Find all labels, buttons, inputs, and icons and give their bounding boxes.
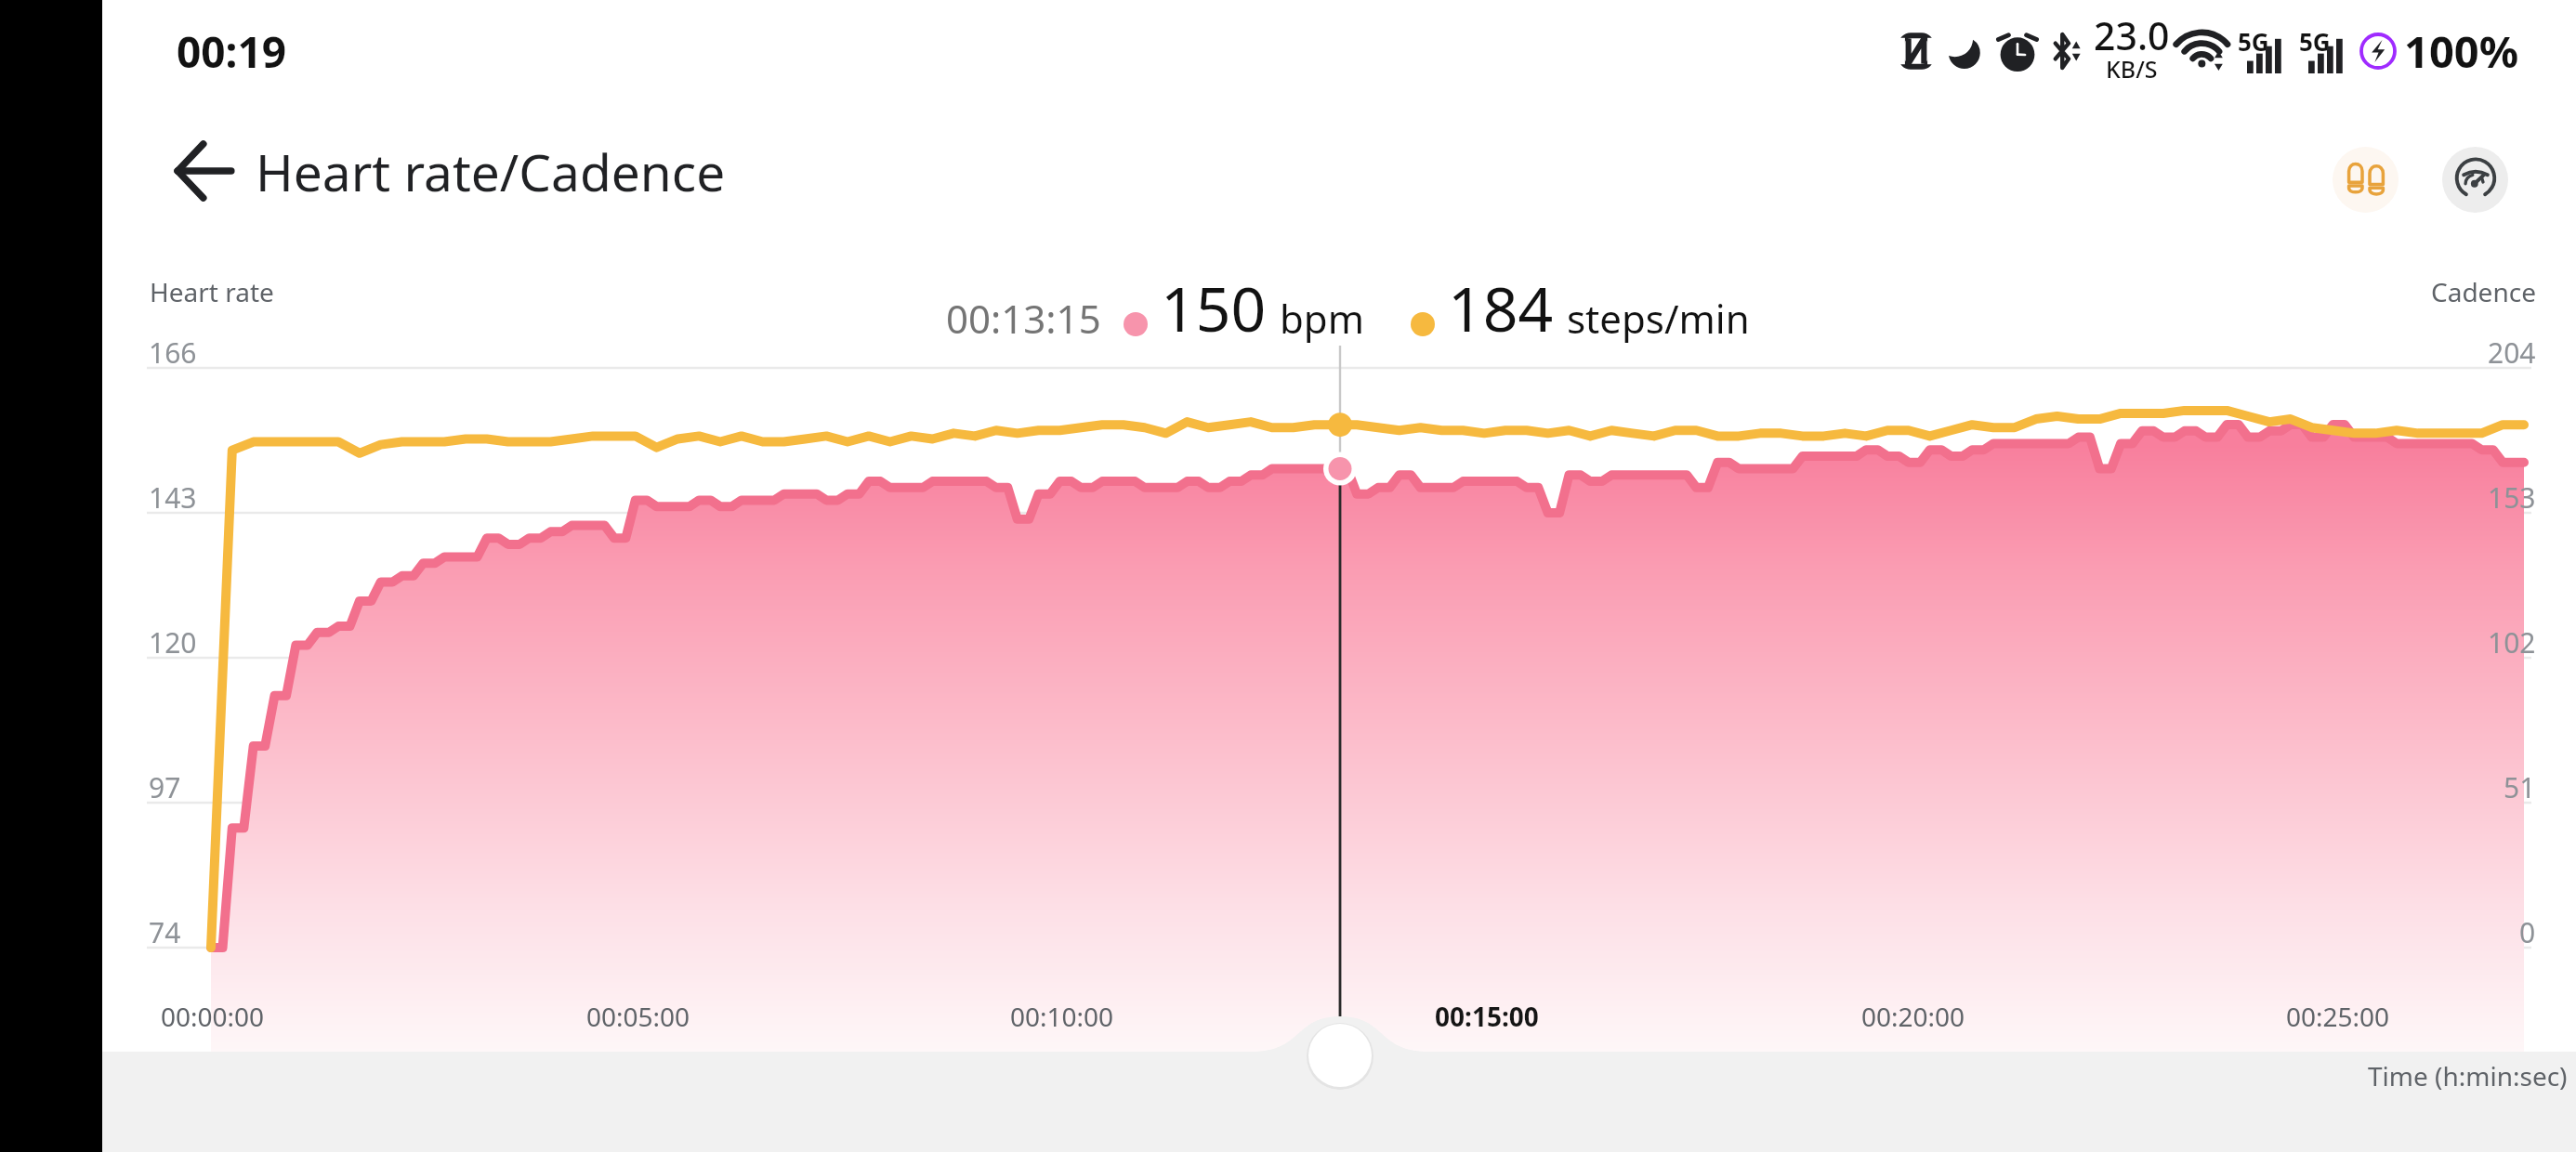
staticText: 51 — [2504, 768, 2536, 806]
staticText: 23.0 — [2094, 9, 2170, 61]
staticText: 00:00:00 — [161, 999, 265, 1034]
staticText: Heart rate/Cadence — [256, 137, 726, 206]
staticText: 97 — [149, 768, 181, 806]
staticText: 150 — [1161, 266, 1267, 349]
staticText: 204 — [2488, 334, 2536, 372]
staticText: 0 — [2519, 913, 2536, 951]
staticText: Heart rate — [150, 274, 274, 309]
staticText: Cadence — [2431, 274, 2536, 309]
staticText: 120 — [149, 623, 197, 661]
staticText: steps/min — [1567, 292, 1750, 345]
staticText: bpm — [1280, 292, 1364, 345]
staticText: 184 — [1448, 266, 1554, 349]
button[interactable]: Speed — [2442, 147, 2508, 213]
staticText: 74 — [149, 913, 181, 951]
staticText: 166 — [149, 334, 197, 372]
staticText: 00:25:00 — [2286, 999, 2390, 1034]
staticText: KB/S — [2106, 53, 2158, 85]
staticText: 5G — [2299, 25, 2331, 58]
staticText: 00:20:00 — [1861, 999, 1965, 1034]
staticText: 5G — [2238, 25, 2269, 58]
staticText: Time (h:min:sec) — [2368, 1058, 2568, 1093]
staticText: 00:19 — [177, 22, 287, 81]
staticText: 102 — [2488, 623, 2536, 661]
button[interactable]: Back — [155, 122, 254, 220]
staticText: 153 — [2488, 478, 2536, 517]
staticText: 100% — [2404, 21, 2519, 81]
staticText: 00:10:00 — [1010, 999, 1114, 1034]
staticText: 143 — [149, 478, 197, 517]
staticText: 00:15:00 — [1435, 999, 1539, 1034]
staticText: 00:05:00 — [586, 999, 690, 1034]
button[interactable]: Cadence — [2333, 147, 2399, 213]
staticText: 00:13:15 — [946, 292, 1101, 345]
button[interactable]: Time scrubber — [1305, 1020, 1375, 1091]
